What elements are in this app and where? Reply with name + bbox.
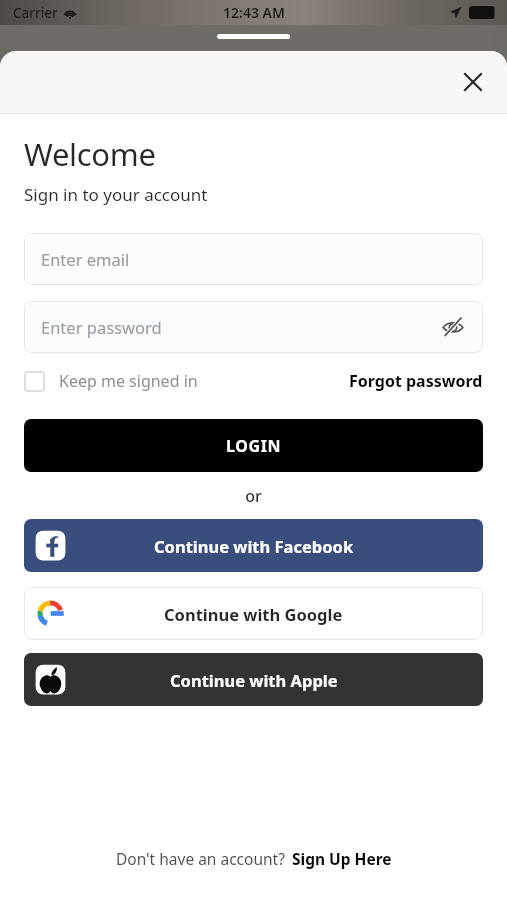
- button[interactable]: Enter password: [24, 301, 483, 353]
- button[interactable]: LOGIN: [24, 419, 483, 472]
- staticText: Carrier: [13, 4, 58, 22]
- staticText: Continue with Apple: [170, 669, 338, 691]
- staticText: Welcome: [24, 133, 156, 175]
- button[interactable]: Keep me signed in: [24, 366, 198, 396]
- staticText: Enter password: [41, 316, 162, 338]
- button[interactable]: Continue with Facebook: [24, 519, 483, 572]
- staticText: Enter email: [41, 248, 130, 270]
- staticText: Sign Up Here: [292, 848, 392, 869]
- button[interactable]: Enter email: [24, 233, 483, 285]
- staticText: Search Location by City, State, or ZIP: [59, 47, 332, 69]
- staticText: Forgot password: [349, 370, 483, 392]
- staticText: Sign in to your account: [24, 183, 208, 206]
- staticText: Don't have an account?: [116, 848, 285, 869]
- button[interactable]: Don't have an account?: [24, 848, 483, 869]
- staticText: Continue with Google: [164, 603, 343, 625]
- staticText: 12:43 AM: [223, 3, 285, 22]
- staticText: LOGIN: [226, 435, 282, 457]
- button[interactable]: Show password: [433, 307, 473, 347]
- staticText: Keep me signed in: [59, 370, 198, 392]
- button[interactable]: Close: [451, 60, 495, 104]
- button[interactable]: Continue with Google: [24, 587, 483, 640]
- staticText: or: [24, 485, 483, 507]
- staticText: Continue with Facebook: [154, 535, 354, 557]
- button[interactable]: Forgot password: [349, 366, 483, 396]
- button[interactable]: Continue with Apple: [24, 653, 483, 706]
